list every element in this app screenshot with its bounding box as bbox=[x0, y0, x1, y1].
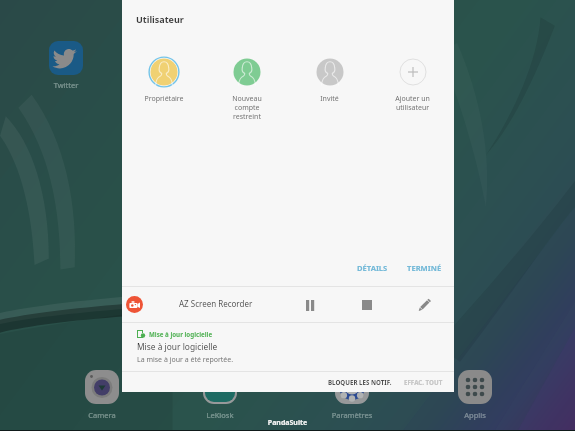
staticText: Mise à jour logicielle bbox=[137, 341, 218, 352]
staticText: Nouveau compte restreint bbox=[232, 94, 262, 121]
staticText: Paramètres bbox=[312, 410, 392, 420]
button[interactable]: Pause bbox=[300, 295, 320, 315]
staticText: Camera bbox=[62, 410, 142, 420]
staticText: Mise à jour logicielle bbox=[149, 330, 213, 338]
staticText: TERMINÉ bbox=[407, 263, 442, 273]
button[interactable]: EFFAC. TOUT bbox=[396, 373, 451, 391]
button[interactable]: Stop bbox=[357, 295, 377, 315]
button[interactable]: Mise à jour logicielle bbox=[122, 323, 454, 371]
staticText: La mise à jour a été reportée. bbox=[137, 355, 234, 365]
staticText: DÉTAILS bbox=[357, 263, 388, 273]
button[interactable]: AZ Screen Recorder bbox=[122, 287, 454, 322]
button[interactable]: Propriétaire bbox=[122, 56, 205, 104]
button[interactable]: Invité bbox=[288, 56, 371, 104]
staticText: BLOQUER LES NOTIF. bbox=[328, 378, 392, 386]
staticText: Applis bbox=[435, 410, 515, 420]
staticText: Propriétaire bbox=[144, 94, 184, 104]
staticText: Utilisateur bbox=[136, 13, 184, 25]
button[interactable]: TERMINÉ bbox=[396, 258, 453, 278]
button[interactable]: Camera bbox=[85, 370, 119, 404]
button[interactable]: BLOQUER LES NOTIF. bbox=[320, 373, 400, 391]
button[interactable]: Paramètres bbox=[335, 370, 369, 404]
button[interactable]: LeKiosk bbox=[203, 370, 237, 404]
staticText: PandaSuite bbox=[0, 418, 575, 428]
button[interactable]: Modifier bbox=[414, 295, 434, 315]
staticText: LeKiosk bbox=[180, 410, 260, 420]
button[interactable]: DÉTAILS bbox=[346, 258, 399, 278]
staticText: Twitter bbox=[26, 80, 106, 90]
button[interactable]: Twitter bbox=[49, 41, 83, 75]
staticText: Invité bbox=[320, 94, 339, 104]
staticText: Ajouter un utilisateur bbox=[395, 94, 430, 112]
button[interactable]: Nouveau compte restreint bbox=[205, 56, 288, 121]
staticText: EFFAC. TOUT bbox=[404, 378, 443, 386]
button[interactable]: Ajouter un utilisateur bbox=[371, 56, 454, 112]
button[interactable]: Applis bbox=[458, 370, 492, 404]
staticText: AZ Screen Recorder bbox=[179, 298, 253, 309]
